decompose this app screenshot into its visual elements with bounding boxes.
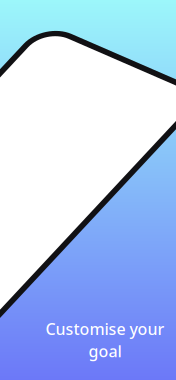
staticText: goal — [88, 340, 121, 362]
staticText: Customise your — [45, 318, 164, 339]
